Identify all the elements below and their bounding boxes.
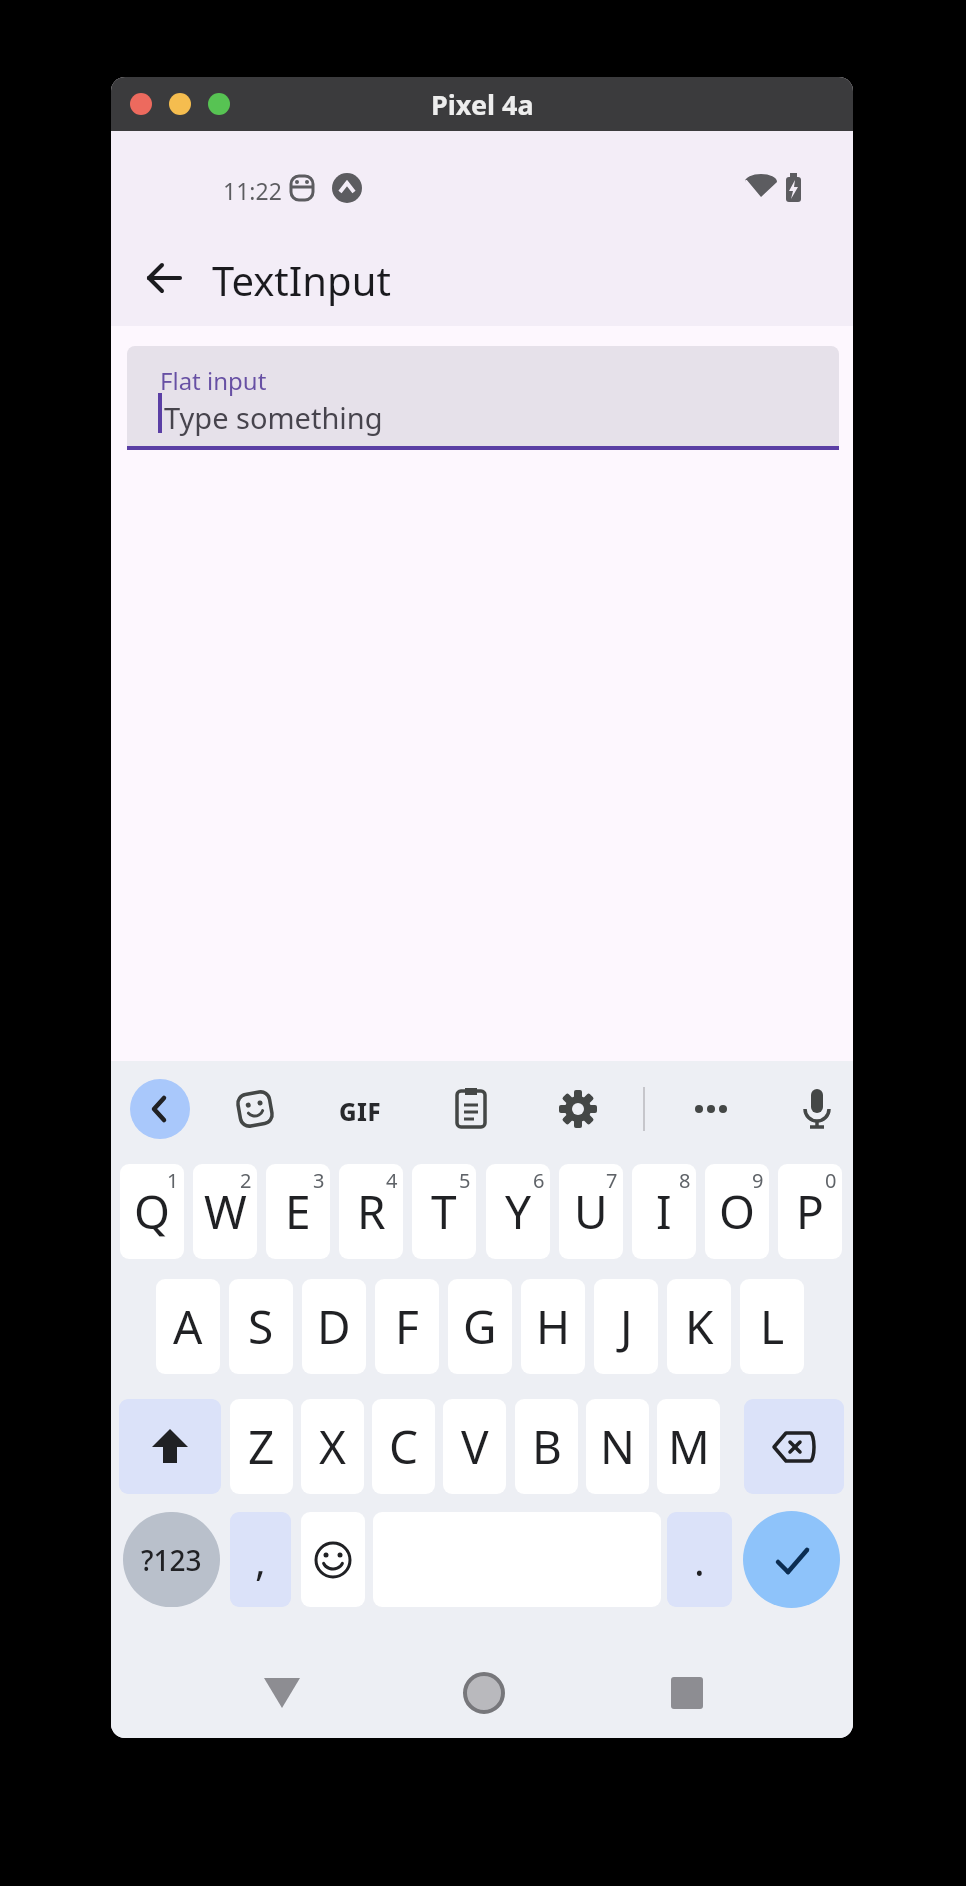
staticText: I <box>656 1180 672 1243</box>
button[interactable] <box>301 1512 365 1607</box>
staticText: Z <box>248 1415 275 1478</box>
button[interactable]: ?123 <box>123 1512 220 1607</box>
staticText: J <box>620 1295 633 1358</box>
button[interactable]: K <box>667 1279 731 1374</box>
staticText: U <box>574 1180 608 1243</box>
staticText: 11:22 <box>223 175 282 206</box>
staticText: G <box>463 1295 497 1358</box>
button[interactable] <box>744 1399 844 1494</box>
staticText: X <box>319 1415 346 1478</box>
button[interactable]: E <box>266 1164 330 1259</box>
button[interactable]: V <box>443 1399 506 1494</box>
staticText: 8 <box>679 1167 691 1194</box>
staticText: M <box>668 1415 710 1478</box>
staticText: 5 <box>459 1167 471 1194</box>
button[interactable]: J <box>594 1279 658 1374</box>
staticText: C <box>389 1415 419 1478</box>
button[interactable]: . <box>667 1512 732 1607</box>
button[interactable]: X <box>301 1399 364 1494</box>
button[interactable]: D <box>302 1279 366 1374</box>
staticText: E <box>285 1180 311 1243</box>
button[interactable]: Z <box>230 1399 293 1494</box>
staticText: Flat input <box>160 364 267 397</box>
staticText: 2 <box>240 1167 252 1194</box>
button[interactable]: B <box>515 1399 578 1494</box>
button[interactable]: W <box>193 1164 257 1259</box>
staticText: P <box>796 1180 824 1243</box>
staticText: R <box>357 1180 386 1243</box>
button[interactable]: , <box>230 1512 291 1607</box>
button[interactable]: T <box>412 1164 476 1259</box>
button[interactable] <box>119 1399 221 1494</box>
button[interactable]: M <box>657 1399 720 1494</box>
staticText: L <box>760 1295 785 1358</box>
button[interactable] <box>743 1511 840 1608</box>
staticText: D <box>317 1295 351 1358</box>
staticText: W <box>204 1180 247 1243</box>
button[interactable]: S <box>229 1279 293 1374</box>
staticText: V <box>461 1415 489 1478</box>
staticText: A <box>173 1295 203 1358</box>
staticText: K <box>685 1295 714 1358</box>
button[interactable] <box>141 253 191 303</box>
button[interactable]: L <box>740 1279 804 1374</box>
staticText: 6 <box>533 1167 545 1194</box>
staticText: 0 <box>825 1167 837 1194</box>
button[interactable]: N <box>586 1399 649 1494</box>
button[interactable]: F <box>375 1279 439 1374</box>
staticText: Y <box>505 1180 532 1243</box>
staticText: ?123 <box>141 1541 202 1579</box>
button[interactable] <box>130 1079 190 1139</box>
staticText: . <box>694 1533 705 1587</box>
staticText: O <box>719 1180 755 1243</box>
staticText: Pixel 4a <box>431 86 534 123</box>
button[interactable]: O <box>705 1164 769 1259</box>
button[interactable]: I <box>632 1164 696 1259</box>
button[interactable]: P <box>778 1164 842 1259</box>
button[interactable]: R <box>339 1164 403 1259</box>
staticText: Q <box>134 1180 170 1243</box>
staticText: B <box>532 1415 562 1478</box>
staticText: , <box>255 1533 266 1587</box>
staticText: 9 <box>752 1167 764 1194</box>
staticText: GIF <box>339 1095 382 1128</box>
staticText: H <box>536 1295 571 1358</box>
button[interactable]: Flat input <box>127 346 839 446</box>
staticText: TextInput <box>212 253 391 307</box>
staticText: Type something <box>164 398 383 437</box>
button[interactable]: G <box>448 1279 512 1374</box>
button[interactable]: U <box>559 1164 623 1259</box>
button[interactable]: A <box>156 1279 220 1374</box>
staticText: S <box>248 1295 274 1358</box>
staticText: 3 <box>313 1167 325 1194</box>
staticText: T <box>431 1180 457 1243</box>
staticText: 4 <box>386 1167 398 1194</box>
button[interactable]: H <box>521 1279 585 1374</box>
button[interactable]: Y <box>486 1164 550 1259</box>
button[interactable]: Q <box>120 1164 184 1259</box>
staticText: N <box>600 1415 635 1478</box>
button[interactable]: C <box>372 1399 435 1494</box>
staticText: F <box>395 1295 419 1358</box>
staticText: 7 <box>606 1167 618 1194</box>
staticText: 1 <box>167 1167 179 1194</box>
